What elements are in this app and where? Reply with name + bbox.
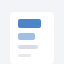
button[interactable] <box>10 12 54 64</box>
